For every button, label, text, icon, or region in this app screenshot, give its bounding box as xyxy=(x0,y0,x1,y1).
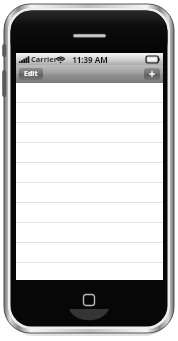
staticText: Edit xyxy=(24,69,38,79)
button[interactable] xyxy=(16,163,163,183)
button[interactable] xyxy=(16,243,163,263)
button[interactable] xyxy=(16,143,163,163)
button[interactable] xyxy=(16,103,163,123)
button[interactable]: Add xyxy=(144,68,160,80)
button[interactable] xyxy=(16,123,163,143)
button[interactable] xyxy=(16,223,163,243)
staticText: Carrier xyxy=(31,54,58,64)
button[interactable] xyxy=(16,183,163,203)
button[interactable]: Edit xyxy=(19,68,43,80)
button[interactable] xyxy=(16,203,163,223)
staticText: 11:39 AM xyxy=(72,54,108,65)
button[interactable] xyxy=(16,83,163,103)
